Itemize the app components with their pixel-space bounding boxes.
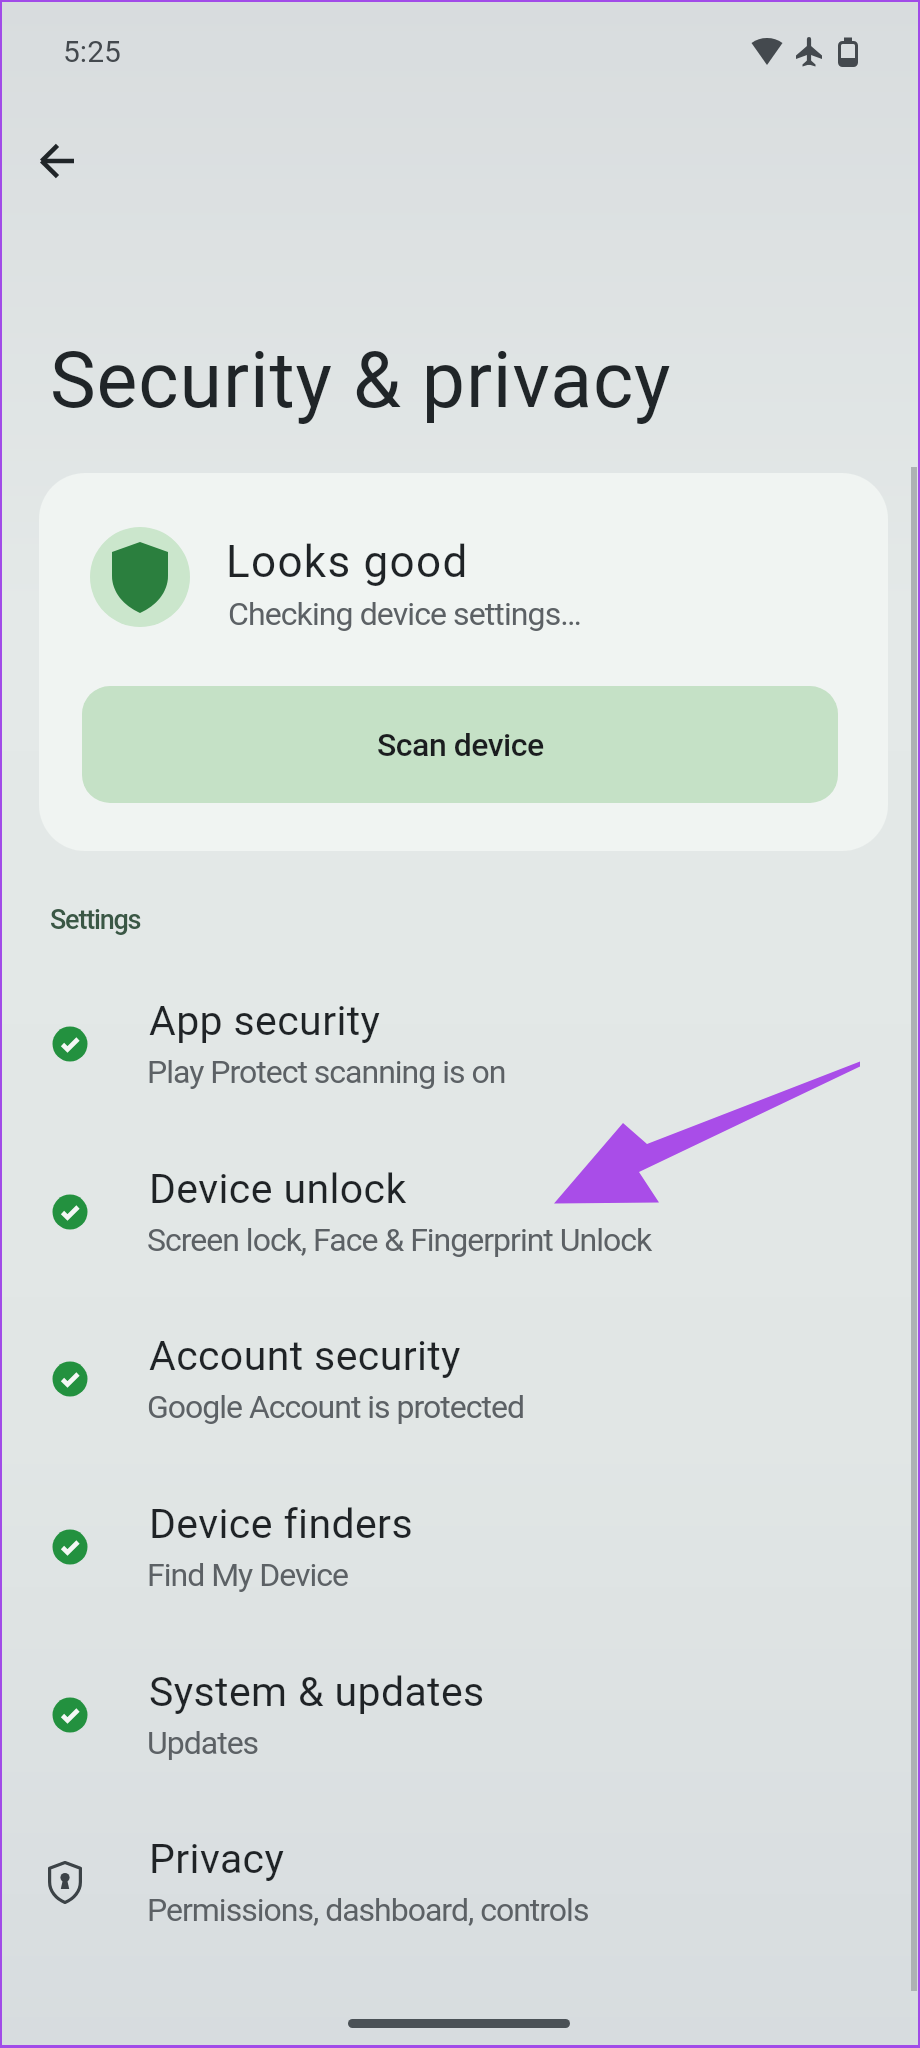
button[interactable]: Looks good <box>39 473 888 851</box>
button[interactable] <box>33 137 81 185</box>
button[interactable]: Device unlock <box>0 1129 920 1296</box>
staticText: Permissions, dashboard, controls <box>147 1891 589 1929</box>
staticText: 5:25 <box>63 34 121 69</box>
staticText: Device finders <box>149 1500 413 1548</box>
staticText: Screen lock, Face & Fingerprint Unlock <box>147 1221 652 1259</box>
staticText: Security & privacy <box>50 336 672 426</box>
staticText: Scan device <box>377 726 544 764</box>
button[interactable]: Device finders <box>0 1464 920 1631</box>
staticText: App security <box>149 997 381 1045</box>
button[interactable]: Account security <box>0 1296 920 1463</box>
staticText: Google Account is protected <box>147 1388 524 1426</box>
button[interactable]: Scan device <box>82 686 838 803</box>
button[interactable]: Privacy <box>0 1799 920 1966</box>
staticText: Updates <box>147 1724 259 1762</box>
button[interactable]: System & updates <box>0 1632 920 1799</box>
staticText: Account security <box>149 1332 461 1380</box>
staticText: Settings <box>50 904 141 936</box>
button[interactable]: App security <box>0 961 920 1128</box>
staticText: System & updates <box>149 1668 485 1716</box>
staticText: Device unlock <box>149 1165 407 1213</box>
staticText: Looks good <box>226 536 469 588</box>
staticText: Privacy <box>149 1835 285 1883</box>
button[interactable] <box>348 2019 570 2028</box>
staticText: Checking device settings… <box>228 595 581 633</box>
staticText: Find My Device <box>147 1556 348 1594</box>
staticText: Play Protect scanning is on <box>147 1053 506 1091</box>
